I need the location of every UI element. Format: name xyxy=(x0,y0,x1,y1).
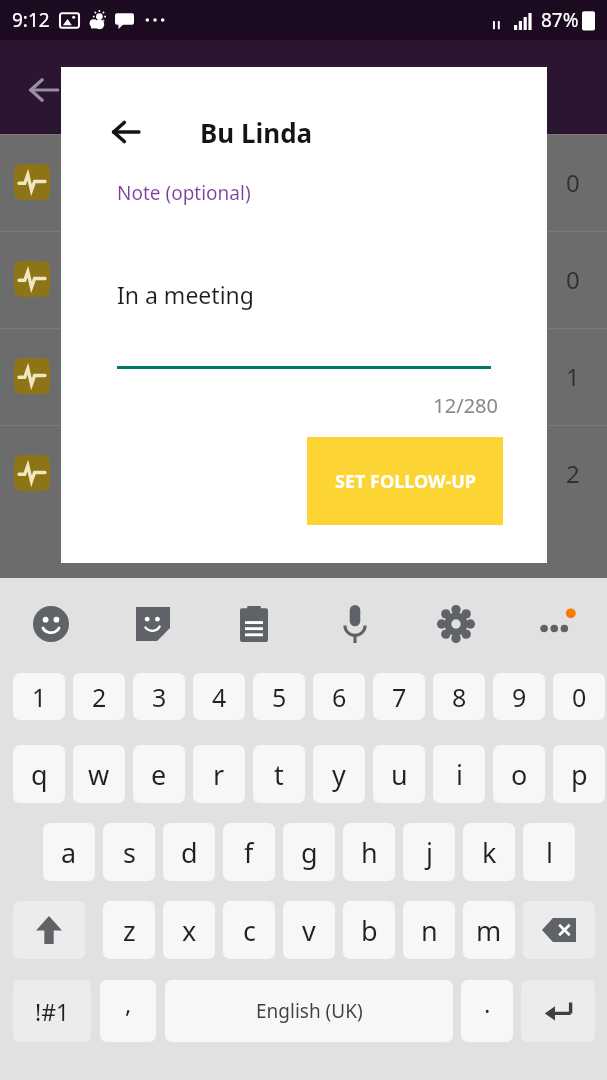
staticText: 1 xyxy=(566,360,580,393)
staticText: m xyxy=(476,912,502,949)
staticText: 2 xyxy=(566,457,580,490)
staticText: x xyxy=(182,912,197,949)
staticText: Bu Linda xyxy=(200,115,313,150)
button[interactable]: Settings xyxy=(405,578,506,670)
button[interactable]: 1 xyxy=(13,673,65,720)
staticText: e xyxy=(151,756,167,793)
button[interactable]: j xyxy=(403,823,455,881)
staticText: 3 xyxy=(152,680,167,714)
button[interactable]: b xyxy=(343,901,395,959)
staticText: y xyxy=(332,756,346,793)
staticText: SET FOLLOW-UP xyxy=(335,469,476,494)
staticText: , xyxy=(125,987,132,1020)
button[interactable]: c xyxy=(223,901,275,959)
staticText: English (UK) xyxy=(256,998,363,1024)
button[interactable]: k xyxy=(463,823,515,881)
button[interactable]: Emoji xyxy=(0,578,102,670)
staticText: 12/280 xyxy=(61,392,498,419)
staticText: 7 xyxy=(392,680,407,714)
button[interactable]: 2 xyxy=(0,425,607,522)
staticText: u xyxy=(391,756,408,793)
button[interactable]: 1 xyxy=(0,328,607,425)
button[interactable]: , xyxy=(100,980,156,1042)
staticText: j xyxy=(426,834,433,871)
button[interactable]: n xyxy=(403,901,455,959)
staticText: l xyxy=(546,834,553,871)
staticText: 0 xyxy=(566,263,580,296)
button[interactable]: SET FOLLOW-UP xyxy=(307,437,503,525)
staticText: k xyxy=(482,834,497,871)
staticText: Bu Linda xyxy=(132,64,237,98)
staticText: 0 xyxy=(566,166,580,199)
button[interactable]: w xyxy=(73,745,125,803)
button[interactable]: 9 xyxy=(493,673,545,720)
staticText: b xyxy=(361,912,378,949)
staticText: f xyxy=(244,834,254,871)
button[interactable]: v xyxy=(283,901,335,959)
button[interactable]: 4 xyxy=(193,673,245,720)
staticText: . xyxy=(484,987,491,1020)
staticText: v xyxy=(302,912,316,949)
staticText: d xyxy=(181,834,198,871)
button[interactable]: s xyxy=(103,823,155,881)
button[interactable]: d xyxy=(163,823,215,881)
button[interactable]: y xyxy=(313,745,365,803)
button[interactable]: More options xyxy=(506,578,607,670)
button[interactable]: 0 xyxy=(0,231,607,328)
button[interactable]: f xyxy=(223,823,275,881)
button[interactable]: 5 xyxy=(253,673,305,720)
staticText: 87% xyxy=(541,7,579,33)
button[interactable]: a xyxy=(43,823,95,881)
button[interactable]: Shift xyxy=(13,901,85,959)
button[interactable]: Voice input xyxy=(304,578,405,670)
button[interactable]: h xyxy=(343,823,395,881)
button[interactable]: 6 xyxy=(313,673,365,720)
staticText: 9:12 xyxy=(12,7,50,33)
button[interactable]: q xyxy=(13,745,65,803)
staticText: q xyxy=(31,756,48,793)
button[interactable]: m xyxy=(463,901,515,959)
button[interactable]: e xyxy=(133,745,185,803)
button[interactable]: u xyxy=(373,745,425,803)
button[interactable]: 7 xyxy=(373,673,425,720)
staticText: n xyxy=(421,912,438,949)
button[interactable]: o xyxy=(493,745,545,803)
staticText: Note (optional) xyxy=(117,180,251,206)
staticText: 2 xyxy=(92,680,107,714)
button[interactable]: Back xyxy=(22,68,66,112)
staticText: t xyxy=(274,756,284,793)
staticText: w xyxy=(88,756,110,793)
button[interactable]: 0 xyxy=(553,673,605,720)
button[interactable]: i xyxy=(433,745,485,803)
staticText: 9 xyxy=(512,680,527,714)
button[interactable]: Clipboard xyxy=(203,578,304,670)
staticText: 6 xyxy=(332,680,347,714)
staticText: a xyxy=(61,834,77,871)
staticText: o xyxy=(511,756,528,793)
button[interactable]: x xyxy=(163,901,215,959)
staticText: 5 xyxy=(272,680,287,714)
staticText: g xyxy=(301,834,318,871)
staticText: !#1 xyxy=(35,996,70,1027)
staticText: s xyxy=(123,834,136,871)
button[interactable]: p xyxy=(553,745,605,803)
button[interactable]: 2 xyxy=(73,673,125,720)
staticText: i xyxy=(456,756,463,793)
button[interactable]: 8 xyxy=(433,673,485,720)
button[interactable]: z xyxy=(103,901,155,959)
staticText: 4 xyxy=(212,680,227,714)
button[interactable]: 0 xyxy=(0,134,607,231)
staticText: In a meeting xyxy=(117,279,254,310)
button[interactable]: Backspace xyxy=(523,901,595,959)
button[interactable]: Enter xyxy=(521,980,595,1042)
button[interactable]: Back xyxy=(103,109,149,155)
button[interactable]: t xyxy=(253,745,305,803)
button[interactable]: r xyxy=(193,745,245,803)
button[interactable]: !#1 xyxy=(13,980,91,1042)
button[interactable]: English (UK) xyxy=(165,980,453,1042)
button[interactable]: Stickers xyxy=(102,578,203,670)
button[interactable]: 3 xyxy=(133,673,185,720)
button[interactable]: l xyxy=(523,823,575,881)
button[interactable]: . xyxy=(461,980,513,1042)
button[interactable]: g xyxy=(283,823,335,881)
